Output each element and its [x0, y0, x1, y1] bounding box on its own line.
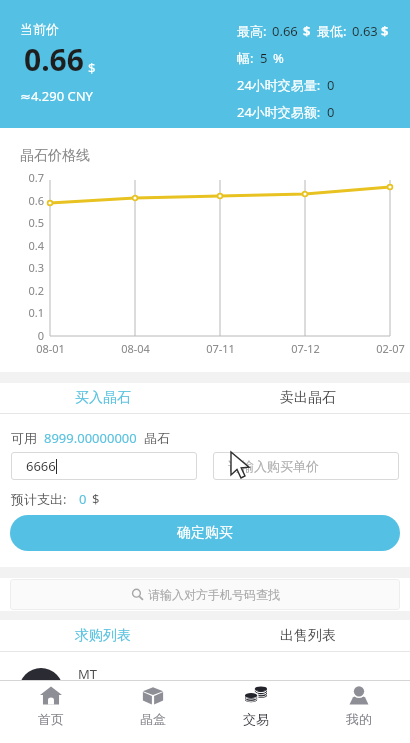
staticText: 02-07	[376, 341, 405, 356]
staticText: $	[381, 22, 389, 40]
staticText: 交易	[243, 711, 269, 727]
staticText: $	[92, 490, 100, 508]
staticText: 我的	[346, 711, 372, 727]
button[interactable]: 交易	[204, 681, 307, 743]
staticText: 请输入对方手机号码查找	[148, 587, 280, 602]
staticText: 当前价	[20, 21, 59, 37]
staticText: 0.66	[24, 39, 84, 80]
button[interactable]: 我的	[307, 681, 410, 743]
staticText: 请输入购买单价	[228, 458, 319, 474]
button[interactable]: 确定购买	[10, 515, 400, 551]
staticText: 可用	[11, 430, 37, 446]
staticText: 0	[37, 328, 44, 343]
staticText: 0.3	[28, 260, 44, 275]
staticText: 确定购买	[177, 524, 233, 542]
staticText: 5	[260, 49, 268, 67]
staticText: 0	[79, 490, 87, 508]
staticText: 08-04	[121, 341, 150, 356]
staticText: 0.63	[352, 22, 378, 40]
staticText: 0.4	[28, 238, 44, 253]
staticText: 预计支出:	[11, 490, 67, 508]
staticText: MT	[78, 665, 98, 683]
staticText: 首页	[38, 711, 64, 727]
staticText: 求购列表	[75, 627, 131, 645]
button[interactable]: 首页	[0, 681, 102, 743]
staticText: ≈4.290 CNY	[20, 87, 93, 105]
staticText: 8999.00000000	[44, 429, 137, 447]
staticText: 出售列表	[280, 627, 336, 645]
button[interactable]: 请输入购买单价	[213, 452, 399, 480]
button[interactable]: 晶盒	[102, 681, 204, 743]
staticText: 买入晶石	[75, 389, 131, 407]
staticText: 08-01	[36, 341, 65, 356]
staticText: 07-12	[291, 341, 320, 356]
button[interactable]: 求购列表	[0, 620, 205, 651]
staticText: 幅:	[237, 49, 254, 67]
staticText: 0	[327, 103, 335, 121]
button[interactable]: 出售列表	[205, 620, 410, 651]
staticText: 24小时交易量:	[237, 76, 321, 94]
staticText: 24小时交易额:	[237, 103, 321, 121]
staticText: 0.2	[28, 283, 44, 298]
staticText: %	[273, 49, 284, 67]
staticText: 0.7	[28, 170, 44, 185]
staticText: 晶石	[144, 430, 170, 446]
staticText: 卖出晶石	[280, 389, 336, 407]
staticText: 0.5	[28, 215, 44, 230]
button[interactable]: 6666	[11, 452, 197, 480]
staticText: 晶盒	[140, 711, 166, 727]
button[interactable]: 卖出晶石	[205, 383, 410, 413]
staticText: 0.1	[28, 305, 44, 320]
button[interactable]: 买入晶石	[0, 383, 205, 413]
staticText: 6666	[26, 457, 56, 475]
staticText: 最低:	[317, 22, 347, 40]
staticText: 最高:	[237, 22, 267, 40]
staticText: 07-11	[206, 341, 235, 356]
staticText: $	[88, 59, 96, 77]
staticText: 0	[327, 76, 335, 94]
button[interactable]: 请输入对方手机号码查找	[10, 579, 400, 610]
staticText: 晶石价格线	[20, 147, 90, 165]
staticText: 0.6	[28, 193, 44, 208]
staticText: $	[303, 22, 311, 40]
staticText: 0.66	[272, 22, 298, 40]
